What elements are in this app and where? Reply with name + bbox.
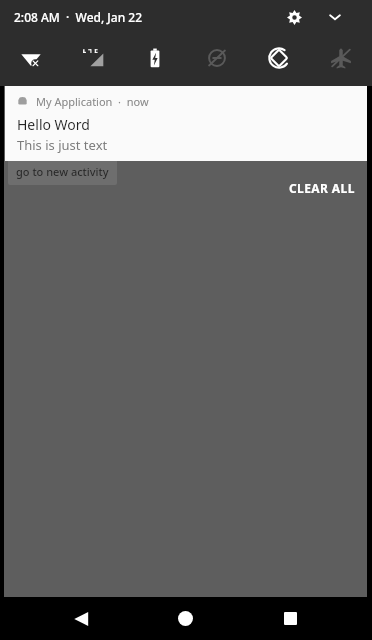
button[interactable]: Mobile data LTE [62,34,124,82]
button[interactable]: Back [58,597,104,640]
button[interactable]: Battery charging [124,34,186,82]
button[interactable]: Airplane mode off [310,34,372,82]
button[interactable]: Recent apps [267,597,313,640]
staticText: CLEAR ALL [289,180,355,196]
button[interactable]: Settings [282,5,306,29]
button[interactable]: Home [162,597,208,640]
button[interactable]: go to new activity [8,158,117,185]
button[interactable]: Wi-Fi off [0,34,62,82]
staticText: Hello Word [17,115,90,134]
button[interactable]: My Application · now [5,86,367,161]
button[interactable]: Expand [323,5,347,29]
button[interactable]: Auto rotate [248,34,310,82]
staticText: My Application · now [36,94,149,109]
staticText: 2:08 AM · Wed, Jan 22 [14,9,143,25]
staticText: go to new activity [16,164,109,179]
button[interactable]: Do not disturb off [186,34,248,82]
button[interactable]: CLEAR ALL [277,176,367,200]
staticText: This is just text [17,136,108,154]
